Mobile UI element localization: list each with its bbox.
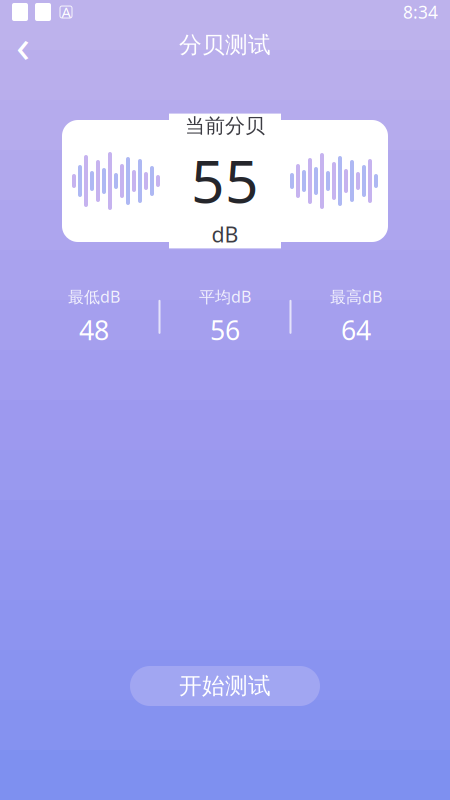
- button[interactable]: Back: [0, 24, 46, 66]
- staticText: 最高dB: [330, 286, 382, 307]
- staticText: 55: [191, 141, 259, 219]
- staticText: 当前分贝: [185, 114, 265, 138]
- staticText: ‹: [16, 15, 30, 75]
- staticText: 8:34: [403, 0, 438, 23]
- staticText: 平均dB: [199, 286, 251, 307]
- staticText: 最低dB: [68, 286, 120, 307]
- staticText: A: [61, 2, 70, 22]
- staticText: 48: [79, 312, 109, 348]
- button[interactable]: 开始测试: [130, 666, 320, 706]
- staticText: 64: [341, 312, 371, 348]
- staticText: 56: [210, 312, 240, 348]
- staticText: 分贝测试: [179, 31, 271, 59]
- staticText: dB: [211, 220, 238, 248]
- staticText: 开始测试: [179, 672, 271, 700]
